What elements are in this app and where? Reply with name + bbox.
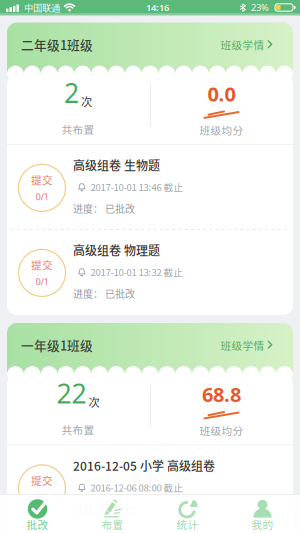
button[interactable]: 班级学情: [220, 337, 273, 353]
button[interactable]: 批改: [0, 495, 75, 533]
staticText: 23%: [251, 1, 269, 14]
staticText: 布置: [101, 517, 123, 532]
staticText: 2017-10-01 13:46 截止: [90, 180, 183, 194]
staticText: 次: [88, 393, 99, 410]
button[interactable]: 我的: [225, 495, 300, 533]
staticText: 68.8: [202, 381, 241, 408]
staticText: 进度： 已批改: [73, 286, 135, 301]
staticText: 2016-12-05 小学 高级组卷: [73, 457, 215, 474]
staticText: 0/1: [35, 190, 48, 203]
staticText: 进度： 已批改: [73, 201, 135, 216]
staticText: 我的: [251, 517, 273, 532]
staticText: 批改: [26, 517, 48, 532]
staticText: 中国联通: [24, 1, 60, 14]
button[interactable]: 统计: [150, 495, 225, 533]
staticText: 共布置: [61, 422, 94, 437]
staticText: 0/1: [35, 275, 48, 288]
staticText: 统计: [176, 517, 198, 532]
staticText: 0.0: [207, 80, 235, 107]
button[interactable]: 提交: [7, 230, 293, 314]
staticText: 高级组卷 物理题: [73, 241, 160, 259]
staticText: 14:16: [146, 1, 169, 14]
staticText: 班级均分: [199, 423, 243, 438]
staticText: 班级学情: [220, 337, 264, 353]
staticText: 高级组卷 生物题: [73, 156, 160, 174]
button[interactable]: 布置: [75, 495, 150, 533]
staticText: 二年级1班级: [21, 35, 93, 54]
staticText: 次: [81, 93, 92, 109]
button[interactable]: 提交: [7, 145, 293, 229]
staticText: 班级学情: [220, 37, 264, 52]
staticText: 提交: [31, 472, 53, 488]
staticText: 共布置: [61, 121, 94, 137]
staticText: 一年级1班级: [21, 336, 93, 354]
staticText: 进度： 已批改: [73, 502, 135, 516]
button[interactable]: 班级学情: [220, 37, 273, 52]
staticText: 0/1: [35, 491, 48, 503]
staticText: 22: [56, 375, 86, 411]
staticText: 提交: [31, 257, 53, 272]
staticText: 班级均分: [199, 122, 243, 137]
staticText: 提交: [31, 172, 53, 187]
staticText: 2016-12-06 08:00 截止: [90, 480, 183, 494]
button[interactable]: 提交: [7, 445, 293, 529]
staticText: 2: [64, 75, 79, 110]
staticText: 2017-10-01 13:32 截止: [90, 265, 183, 279]
